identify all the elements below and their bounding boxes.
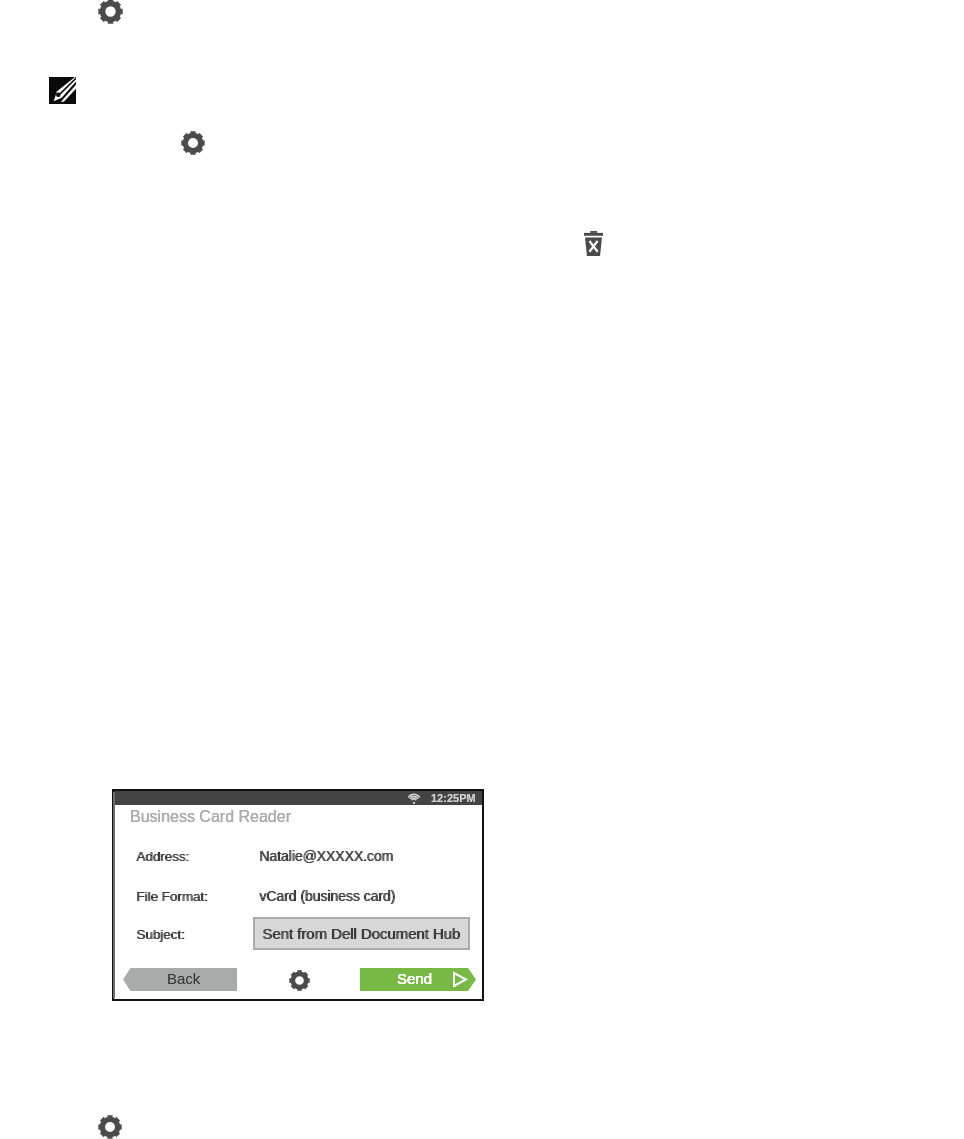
staticText: File Format:	[137, 889, 209, 904]
button[interactable]: Settings	[98, 1115, 122, 1139]
button[interactable]: Settings	[289, 970, 310, 991]
button[interactable]: Note	[49, 77, 76, 104]
staticText: Send	[397, 970, 433, 987]
button[interactable]: Sent from Dell Document Hub	[254, 918, 469, 949]
staticText: Natalie@XXXXX.com	[259, 848, 393, 864]
staticText: Subject:	[137, 927, 186, 942]
button[interactable]: Delete	[584, 231, 603, 256]
staticText: Subject:	[136, 927, 185, 942]
staticText: Address:	[137, 849, 190, 864]
staticText: 12:25PM	[431, 792, 476, 804]
staticText: Business Card Reader	[130, 808, 291, 826]
staticText: vCard (business card)	[260, 888, 396, 904]
button[interactable]: Settings	[98, 0, 123, 24]
staticText: Back	[167, 970, 201, 987]
staticText: vCard (business card)	[259, 888, 395, 904]
staticText: Sent from Dell Document Hub	[263, 926, 461, 943]
staticText: Back	[167, 970, 201, 987]
staticText: Sent from Dell Document Hub	[262, 926, 460, 943]
staticText: Business Card Reader	[130, 808, 291, 826]
staticText: Send	[397, 970, 433, 987]
staticText: Natalie@XXXXX.com	[260, 848, 394, 864]
button[interactable]: Back	[123, 968, 237, 991]
staticText: Address:	[136, 849, 189, 864]
staticText: File Format:	[136, 889, 208, 904]
button[interactable]: Send	[360, 968, 476, 991]
button[interactable]: Settings	[181, 131, 205, 155]
